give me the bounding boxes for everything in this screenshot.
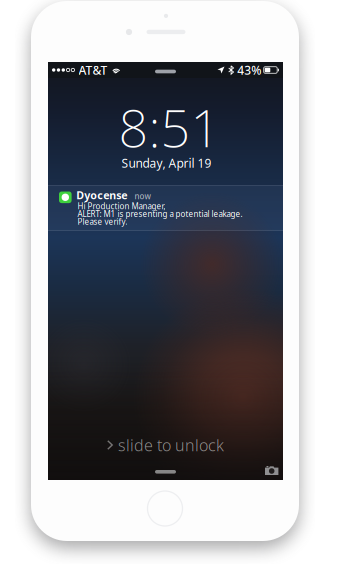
staticText: Dyocense bbox=[76, 188, 127, 202]
staticText: Please verify. bbox=[77, 216, 127, 227]
button[interactable]: Dyocense bbox=[48, 185, 283, 231]
staticText: Sunday, April 19 bbox=[121, 155, 211, 171]
staticText: ALERT: M1 is presenting a potential leak… bbox=[77, 209, 242, 219]
staticText: now bbox=[134, 191, 150, 201]
staticText: Hi Production Manager, bbox=[77, 201, 165, 211]
button[interactable]: Camera bbox=[261, 461, 282, 479]
staticText: AT&T bbox=[79, 62, 108, 78]
staticText: 43% bbox=[237, 62, 261, 78]
staticText: 8:51 bbox=[118, 92, 220, 162]
staticText: slide to unlock bbox=[118, 434, 224, 456]
